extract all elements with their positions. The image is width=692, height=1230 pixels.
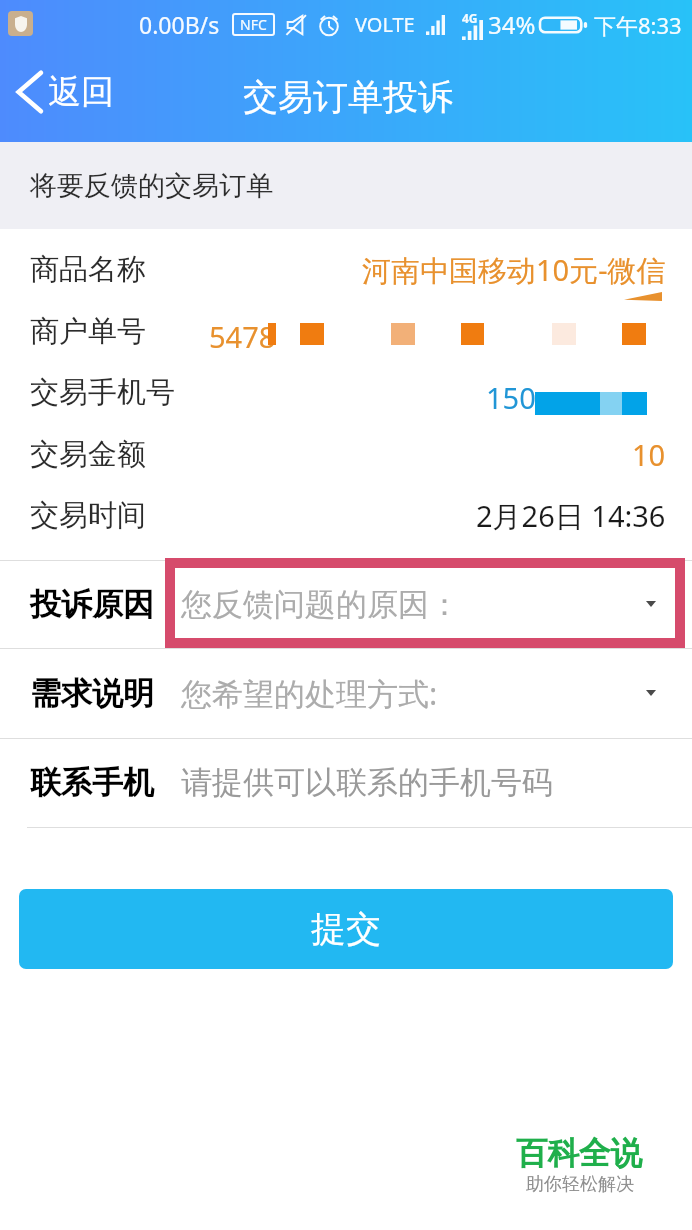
staticText: 提交 <box>311 907 381 951</box>
staticText: 您反馈问题的原因： <box>181 585 460 624</box>
staticText: 返回 <box>48 71 114 113</box>
staticText: 商品名称 <box>30 251 146 288</box>
staticText: 交易订单投诉 <box>243 75 453 119</box>
staticText: 投诉原因 <box>30 585 154 624</box>
staticText: 百科全说 <box>516 1134 642 1174</box>
staticText: VOLTE <box>355 11 415 38</box>
other: 返回 <box>16 68 42 116</box>
staticText: 150 <box>486 378 536 417</box>
button[interactable]: 联系手机 <box>0 738 692 827</box>
button[interactable]: 提交 <box>19 889 673 969</box>
staticText: 您希望的处理方式: <box>181 672 438 714</box>
staticText: 2月26日 14:36 <box>476 496 666 536</box>
staticText: 将要反馈的交易订单 <box>30 169 273 203</box>
staticText: 商户单号 <box>30 313 146 350</box>
button[interactable]: 返回 <box>16 68 114 116</box>
staticText: 河南中国移动10元-微信 <box>362 250 666 290</box>
staticText: 请提供可以联系的手机号码 <box>181 763 553 802</box>
staticText: 交易手机号 <box>30 374 175 411</box>
staticText: 0.00B/s <box>139 9 220 40</box>
staticText: 需求说明 <box>30 674 154 713</box>
staticText: 交易时间 <box>30 497 146 534</box>
staticText: 4G <box>462 10 478 26</box>
staticText: 下午8:33 <box>594 10 682 40</box>
staticText: 10 <box>632 435 666 474</box>
staticText: 5478 <box>209 317 276 356</box>
staticText: 助你轻松解决 <box>526 1173 634 1196</box>
staticText: NFC <box>240 15 267 34</box>
button[interactable]: 投诉原因 <box>0 560 692 648</box>
staticText: 交易金额 <box>30 436 146 473</box>
button[interactable]: 需求说明 <box>0 648 692 738</box>
staticText: 联系手机 <box>30 763 154 802</box>
staticText: 34% <box>488 8 536 41</box>
